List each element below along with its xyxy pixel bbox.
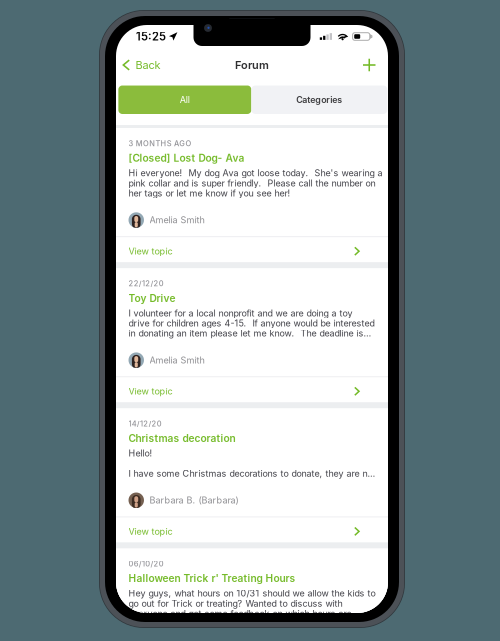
staticText: 14/12/20 — [128, 419, 162, 428]
button[interactable]: All — [118, 85, 251, 114]
button[interactable]: View topic — [116, 377, 388, 402]
staticText: 3 MONTHS AGO — [128, 139, 191, 148]
button[interactable]: View topic — [116, 237, 388, 262]
staticText: Hello! — [128, 448, 152, 459]
staticText: I volunteer for a local nonprofit and we… — [128, 308, 352, 318]
staticText: drive for children ages 4-15. If anyone … — [128, 318, 374, 329]
button[interactable]: View topic — [116, 517, 388, 542]
staticText: Toy Drive — [128, 292, 175, 304]
staticText: her tags or let me know if you see her! — [128, 188, 290, 199]
button[interactable]: New topic — [357, 54, 381, 76]
staticText: 06/10/20 — [128, 559, 164, 568]
staticText: Back — [136, 58, 161, 72]
staticText: go out for Trick or treating? Wanted to … — [128, 598, 342, 609]
staticText: 22/12/20 — [128, 279, 164, 288]
staticText: [Closed] Lost Dog- Ava — [128, 152, 244, 164]
staticText: Halloween Trick r' Treating Hours — [128, 572, 295, 585]
staticText: Hey guys, what hours on 10/31 should we … — [128, 588, 375, 599]
staticText: in donating an item please let me know. … — [128, 328, 371, 339]
staticText: Forum — [235, 58, 269, 72]
staticText: Christmas decoration — [128, 432, 235, 444]
staticText: Amelia Smith — [149, 355, 204, 366]
button[interactable]: Back — [116, 53, 167, 77]
staticText: 15:25 — [136, 30, 166, 43]
staticText: pink collar and is super friendly. Pleas… — [128, 178, 375, 188]
staticText: Hi everyone! My dog Ava got loose today.… — [128, 168, 382, 178]
staticText: Barbara B. (Barbara) — [149, 495, 238, 506]
staticText: Categories — [296, 94, 342, 105]
button[interactable]: Categories — [251, 85, 387, 114]
staticText: View topic — [128, 526, 172, 537]
staticText: everyone and get some feedback on which … — [128, 608, 351, 619]
staticText: View topic — [128, 246, 172, 257]
staticText: All — [180, 94, 190, 105]
staticText: I have some Christmas decorations to don… — [128, 468, 375, 479]
staticText: Amelia Smith — [149, 215, 204, 226]
staticText: View topic — [128, 386, 172, 397]
